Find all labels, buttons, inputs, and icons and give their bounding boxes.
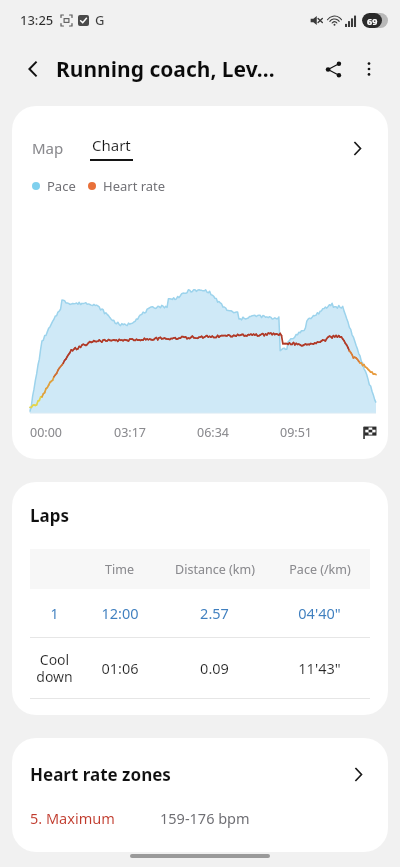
staticText: 12:00: [101, 603, 139, 623]
staticText: Laps: [30, 504, 69, 527]
staticText: Pace (/km): [289, 561, 351, 578]
button[interactable]: Map: [30, 136, 66, 160]
staticText: 5. Maximum: [30, 808, 115, 828]
staticText: Heart rate zones: [30, 763, 171, 786]
staticText: 09:51: [280, 424, 312, 441]
staticText: 159-176 bpm: [160, 808, 250, 828]
staticText: 01:06: [101, 658, 139, 678]
button[interactable]: Open chart details: [340, 131, 374, 165]
staticText: Heart rate: [103, 177, 166, 195]
button[interactable]: More options: [352, 52, 386, 86]
button[interactable]: Cool down: [30, 638, 370, 698]
staticText: Pace: [47, 177, 76, 195]
staticText: 2.57: [200, 603, 229, 623]
button[interactable]: Back: [14, 50, 52, 88]
staticText: Running coach, Lev...: [56, 55, 275, 84]
staticText: 04'40": [298, 603, 341, 623]
button[interactable]: Chart: [88, 133, 135, 163]
staticText: 06:34: [197, 424, 229, 441]
staticText: Distance (km): [175, 561, 255, 578]
staticText: 13:25: [20, 11, 54, 29]
staticText: Time: [105, 561, 134, 578]
staticText: Chart: [92, 135, 131, 155]
staticText: 00:00: [30, 424, 62, 441]
staticText: 69: [367, 15, 378, 27]
button[interactable]: Share: [314, 50, 352, 88]
staticText: 03:17: [114, 424, 146, 441]
staticText: Map: [32, 138, 64, 158]
staticText: 0.09: [200, 658, 229, 678]
staticText: G: [95, 11, 105, 29]
staticText: 1: [50, 604, 59, 623]
button[interactable]: Heart rate zones: [30, 758, 374, 790]
staticText: 11'43": [298, 658, 341, 678]
staticText: Cool down: [36, 650, 73, 686]
button[interactable]: 1: [30, 589, 370, 637]
